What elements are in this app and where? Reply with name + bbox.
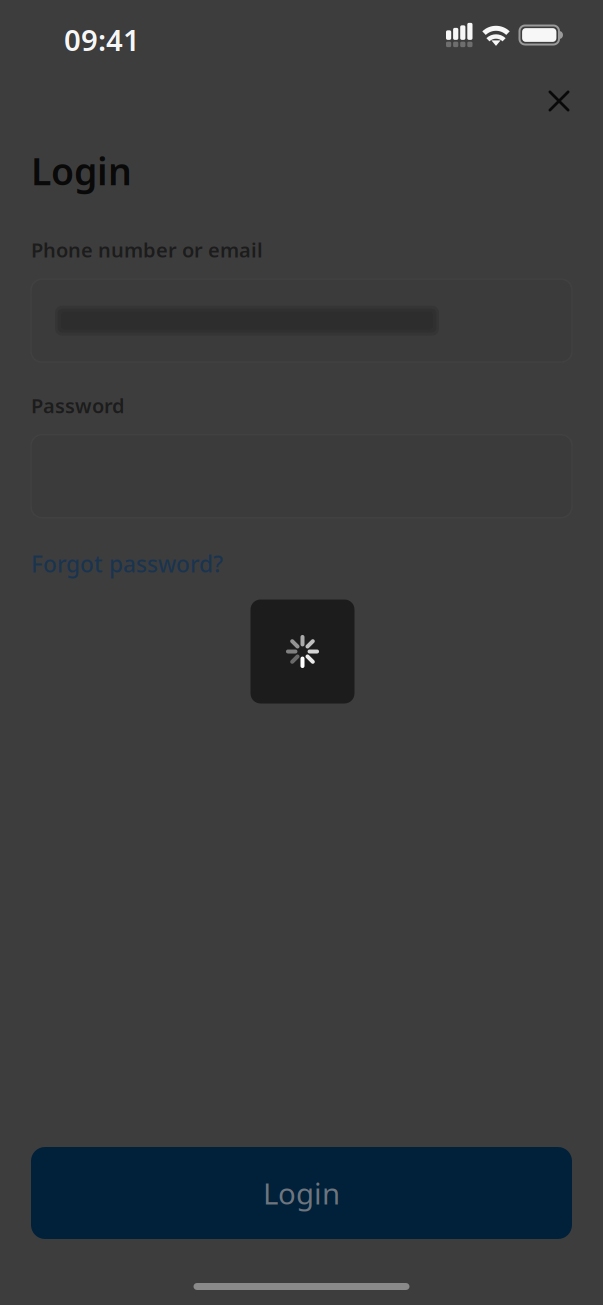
staticText: Forgot password?: [31, 549, 223, 579]
staticText: Login: [263, 1173, 340, 1212]
button[interactable]: Close: [537, 79, 581, 123]
button[interactable]: Login: [31, 1147, 572, 1239]
button[interactable]: Forgot password?: [31, 518, 223, 585]
staticText: 09:41: [64, 20, 140, 59]
staticText: Login: [31, 146, 132, 196]
staticText: Password: [31, 392, 125, 419]
staticText: Phone number or email: [31, 237, 263, 263]
